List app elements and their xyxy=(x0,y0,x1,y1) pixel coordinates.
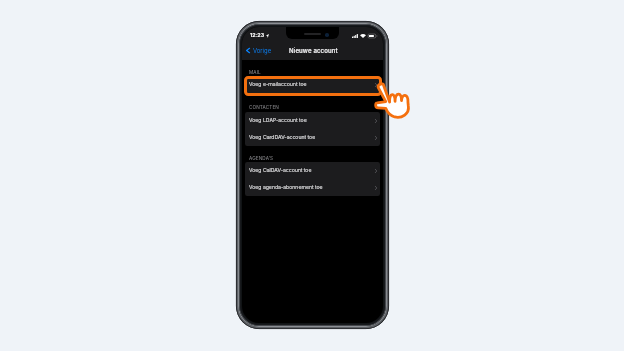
staticText: CONTACTEN xyxy=(249,104,279,110)
staticText: Vorige xyxy=(253,47,272,54)
button[interactable]: Voeg CalDAV-account toe xyxy=(245,162,380,179)
staticText: AGENDA'S xyxy=(249,155,274,161)
staticText: Voeg agenda-abonnement toe xyxy=(249,184,323,190)
button[interactable]: Voeg LDAP-account toe xyxy=(245,112,380,129)
staticText: Voeg CardDAV-account toe xyxy=(249,134,316,140)
button[interactable]: Vorige xyxy=(242,44,275,57)
button[interactable]: Voeg e-mailaccount toe xyxy=(245,76,380,93)
other: Tap here xyxy=(376,84,410,118)
staticText: MAIL xyxy=(249,69,261,75)
staticText: Voeg CalDAV-account toe xyxy=(249,167,312,173)
staticText: Nieuwe account xyxy=(289,47,338,54)
button[interactable]: Voeg CardDAV-account toe xyxy=(245,129,380,146)
staticText: Voeg e-mailaccount toe xyxy=(249,81,307,87)
button[interactable]: Voeg agenda-abonnement toe xyxy=(245,179,380,196)
staticText: Voeg LDAP-account toe xyxy=(249,117,307,123)
staticText: 12:23 xyxy=(250,32,265,39)
button[interactable] xyxy=(244,76,382,96)
